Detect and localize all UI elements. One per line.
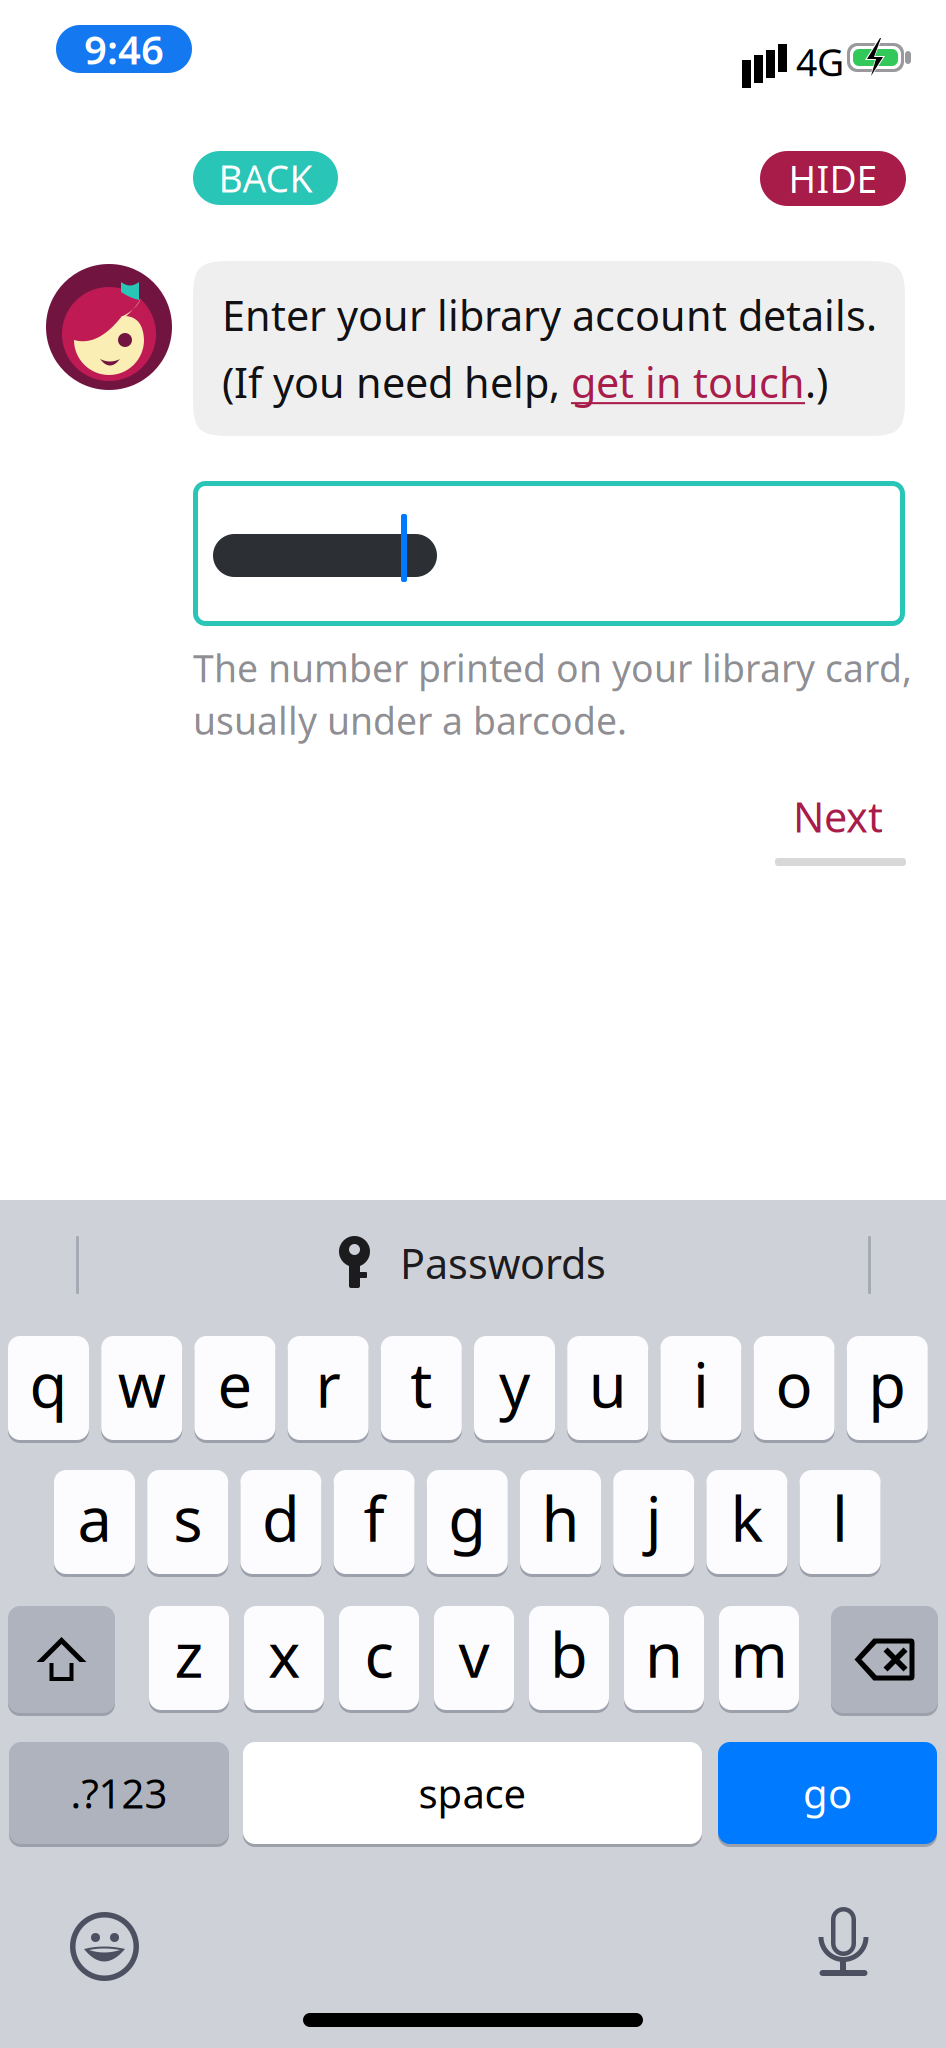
staticText: j (646, 1477, 662, 1559)
button[interactable]: y (474, 1336, 555, 1440)
staticText: i (693, 1343, 709, 1425)
button[interactable]: o (754, 1336, 835, 1440)
staticText: Passwords (400, 1236, 606, 1290)
staticText: BACK (218, 153, 312, 203)
button[interactable]: e (194, 1336, 275, 1440)
staticText: y (499, 1343, 530, 1425)
button[interactable]: go (718, 1742, 937, 1844)
staticText: .) (805, 354, 828, 409)
button[interactable]: k (706, 1470, 787, 1574)
button[interactable]: Delete (831, 1606, 938, 1713)
button[interactable]: Dictate (818, 1907, 868, 1976)
button[interactable]: m (719, 1606, 799, 1710)
staticText: 4G (796, 37, 844, 87)
staticText: o (776, 1343, 813, 1425)
staticText: get in touch (571, 354, 805, 409)
button[interactable]: t (381, 1336, 462, 1440)
button[interactable]: f (334, 1470, 415, 1574)
staticText: (If you need help, (222, 354, 571, 409)
staticText: Next (793, 789, 883, 844)
button[interactable]: q (8, 1336, 89, 1440)
button[interactable]: z (149, 1606, 229, 1710)
button[interactable]: .?123 (9, 1742, 229, 1844)
button[interactable]: BACK (193, 151, 338, 205)
button[interactable]: r (288, 1336, 369, 1440)
staticText: d (262, 1477, 300, 1559)
staticText: The number printed on your library card, (193, 643, 912, 693)
button[interactable]: c (339, 1606, 419, 1710)
button[interactable]: l (800, 1470, 881, 1574)
button[interactable]: v (434, 1606, 514, 1710)
button[interactable]: Emoji keyboard (70, 1912, 139, 1981)
staticText: usually under a barcode. (193, 696, 627, 745)
staticText: 9:46 (84, 22, 164, 75)
button[interactable]: h (520, 1470, 601, 1574)
staticText: s (173, 1477, 202, 1559)
staticText: f (364, 1477, 385, 1559)
staticText: b (550, 1613, 588, 1695)
button[interactable]: get in touch (571, 354, 805, 409)
staticText: u (589, 1343, 627, 1425)
button[interactable]: d (240, 1470, 321, 1574)
staticText: e (217, 1343, 252, 1425)
button[interactable]: HIDE (760, 151, 906, 206)
staticText: p (868, 1343, 906, 1425)
staticText: a (77, 1477, 111, 1559)
staticText: x (268, 1613, 300, 1695)
staticText: v (458, 1613, 489, 1695)
staticText: go (803, 1766, 852, 1819)
staticText: g (448, 1477, 486, 1559)
button[interactable]: w (101, 1336, 182, 1440)
staticText: z (174, 1613, 203, 1695)
button[interactable]: u (567, 1336, 648, 1440)
button[interactable]: g (427, 1470, 508, 1574)
button[interactable]: x (244, 1606, 324, 1710)
staticText: HIDE (788, 154, 877, 203)
button[interactable]: n (624, 1606, 704, 1710)
staticText: h (541, 1477, 579, 1559)
staticText: l (832, 1477, 848, 1559)
staticText: t (410, 1343, 432, 1425)
staticText: r (316, 1343, 341, 1425)
staticText: c (364, 1613, 393, 1695)
staticText: Enter your library account details. (222, 288, 877, 342)
button[interactable]: a (54, 1470, 135, 1574)
button[interactable]: Shift (8, 1606, 115, 1713)
button[interactable]: s (147, 1470, 228, 1574)
staticText: w (118, 1343, 166, 1425)
staticText: m (730, 1613, 787, 1695)
button[interactable]: p (847, 1336, 928, 1440)
staticText: n (645, 1613, 683, 1695)
button[interactable]: space (243, 1742, 702, 1844)
staticText: k (730, 1477, 763, 1559)
button[interactable]: b (529, 1606, 609, 1710)
staticText: q (29, 1343, 67, 1425)
button[interactable]: i (660, 1336, 741, 1440)
staticText: space (418, 1766, 526, 1819)
button[interactable]: Next (775, 791, 906, 881)
staticText: .?123 (70, 1766, 167, 1819)
button[interactable]: j (613, 1470, 694, 1574)
